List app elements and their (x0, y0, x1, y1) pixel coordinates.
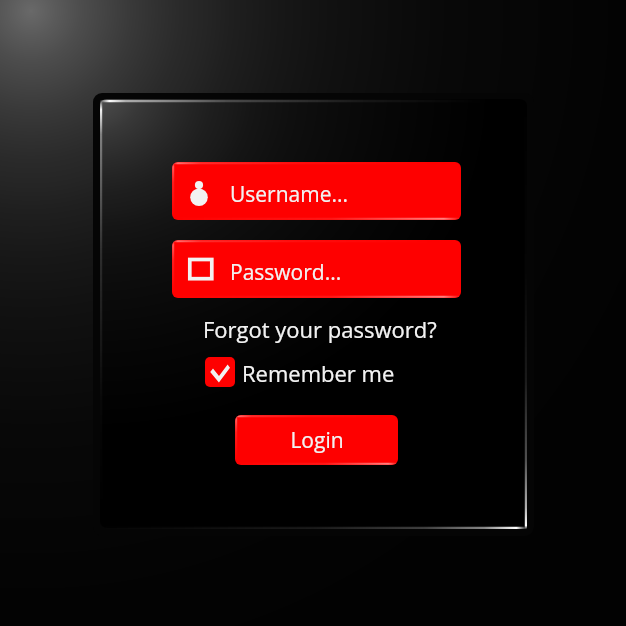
staticText: Remember me (242, 358, 395, 388)
staticText: Username... (230, 180, 349, 209)
button[interactable]: Forgot your password? (203, 314, 437, 344)
staticText: Login (290, 426, 344, 455)
staticText: Password... (230, 258, 342, 287)
other: Password... (172, 240, 461, 298)
button[interactable]: Remember me (203, 355, 395, 389)
button[interactable]: Login (235, 415, 398, 465)
staticText: Forgot your password? (203, 314, 437, 344)
button[interactable]: Password... (172, 240, 461, 298)
other: Username... (172, 162, 461, 220)
button[interactable]: Username... (172, 162, 461, 220)
